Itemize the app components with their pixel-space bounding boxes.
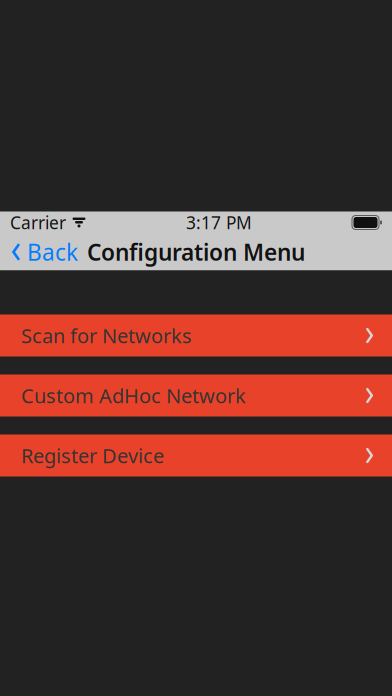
staticText: Custom AdHoc Network [21, 382, 246, 409]
button[interactable]: Back [0, 231, 78, 273]
button[interactable]: Custom AdHoc Network [0, 374, 392, 416]
staticText: Configuration Menu [87, 237, 305, 267]
button[interactable]: Register Device [0, 434, 392, 476]
button[interactable]: Scan for Networks [0, 314, 392, 356]
staticText: Carrier [10, 211, 66, 234]
staticText: Register Device [21, 442, 164, 469]
staticText: 3:17 PM [186, 211, 252, 234]
staticText: Scan for Networks [21, 322, 192, 349]
staticText: Back [27, 237, 78, 267]
